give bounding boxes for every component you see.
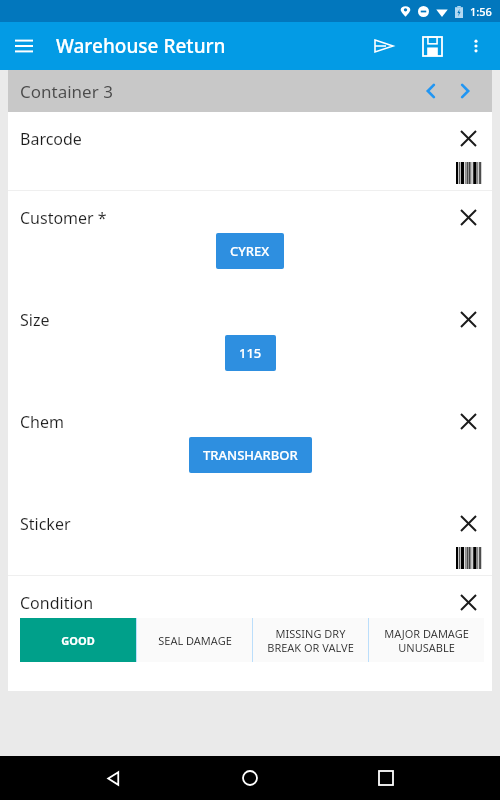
button[interactable]: Previous container	[414, 74, 448, 108]
staticText: SEAL DAMAGE	[158, 633, 232, 648]
staticText: 115	[239, 344, 262, 362]
button[interactable]: Back	[92, 756, 136, 800]
staticText: 1:56	[470, 4, 492, 19]
button[interactable]: Open navigation menu	[0, 22, 48, 70]
button[interactable]: Customer *	[8, 191, 492, 293]
button[interactable]: Clear Barcode	[448, 118, 488, 158]
button[interactable]: 115	[225, 335, 276, 371]
button[interactable]: GOOD	[20, 618, 136, 662]
button[interactable]: CYREX	[216, 233, 284, 269]
button[interactable]: Size	[8, 293, 492, 395]
staticText: MAJOR DAMAGE UNUSABLE	[384, 626, 469, 655]
staticText: GOOD	[61, 633, 95, 648]
staticText: Barcode	[20, 128, 82, 150]
staticText: Warehouse Return	[56, 33, 226, 59]
button[interactable]: Save	[408, 22, 456, 70]
staticText: Chem	[20, 411, 64, 433]
staticText: Sticker	[20, 513, 71, 535]
button[interactable]: SEAL DAMAGE	[137, 618, 252, 662]
staticText: CYREX	[230, 242, 270, 260]
button[interactable]: Clear Chem	[448, 401, 488, 441]
staticText: TRANSHARBOR	[203, 446, 298, 464]
staticText: MISSING DRY BREAK OR VALVE	[267, 626, 354, 655]
button[interactable]: MISSING DRY BREAK OR VALVE	[253, 618, 368, 662]
button[interactable]: Clear Sticker	[448, 503, 488, 543]
button[interactable]: Scan Barcode barcode	[456, 162, 482, 184]
button[interactable]: Home	[228, 756, 272, 800]
button[interactable]: Scan Sticker barcode	[456, 547, 482, 569]
button[interactable]: TRANSHARBOR	[189, 437, 312, 473]
button[interactable]: Chem	[8, 395, 492, 497]
button[interactable]: Barcode	[8, 112, 492, 190]
button[interactable]: Recent apps	[364, 756, 408, 800]
button[interactable]: Clear Size	[448, 299, 488, 339]
button[interactable]: Clear Customer *	[448, 197, 488, 237]
staticText: Condition	[20, 592, 94, 614]
staticText: Container 3	[20, 80, 113, 103]
staticText: Size	[20, 309, 50, 331]
button[interactable]: Clear Condition	[448, 582, 488, 622]
button[interactable]: MAJOR DAMAGE UNUSABLE	[369, 618, 484, 662]
button[interactable]: Next container	[448, 74, 482, 108]
button[interactable]: Sticker	[8, 497, 492, 575]
button[interactable]: More options	[456, 26, 496, 66]
button[interactable]: Send	[360, 22, 408, 70]
staticText: Customer *	[20, 207, 107, 229]
